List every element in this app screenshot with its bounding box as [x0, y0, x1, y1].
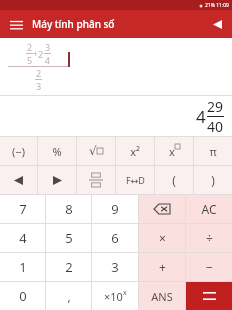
staticText: 40 [207, 117, 224, 136]
staticText: 6 [111, 229, 119, 247]
staticText: 8 [65, 200, 73, 218]
staticText: π [209, 144, 217, 159]
button[interactable]: Move left [0, 166, 37, 194]
button[interactable]: 1 [0, 253, 45, 281]
button[interactable]: − [186, 253, 232, 281]
button[interactable]: Fraction [77, 166, 115, 194]
staticText: (−) [12, 144, 25, 159]
button[interactable]: Square root [77, 137, 115, 165]
staticText: 0 [19, 287, 27, 305]
staticText: 2 [36, 67, 42, 79]
button[interactable]: 8 [46, 195, 91, 223]
button[interactable]: Menu [6, 14, 26, 34]
button[interactable]: 2 [8, 41, 70, 92]
staticText: 3 [111, 258, 119, 276]
staticText: − [206, 259, 213, 275]
staticText: ÷ [206, 230, 213, 246]
staticText: 9 [111, 200, 119, 218]
staticText: 4 [196, 105, 206, 128]
button[interactable]: 0 [0, 282, 45, 310]
staticText: 4 [45, 54, 51, 66]
staticText: % [52, 144, 62, 159]
staticText: 2 [65, 258, 73, 276]
staticText: , [67, 288, 71, 304]
staticText: 7 [19, 200, 27, 218]
button[interactable]: 9 [92, 195, 138, 223]
staticText: x² [130, 144, 140, 159]
staticText: ANS [151, 289, 173, 304]
staticText: ×10 [104, 289, 123, 304]
staticText: F↔D [126, 174, 145, 186]
staticText: 29 [207, 97, 224, 116]
button[interactable]: 6 [92, 224, 138, 252]
staticText: x [123, 288, 127, 298]
button[interactable]: + [139, 253, 185, 281]
button[interactable]: AC [186, 195, 232, 223]
staticText: 2 [27, 41, 33, 53]
button[interactable]: 7 [0, 195, 45, 223]
button[interactable]: 3 [92, 253, 138, 281]
button[interactable]: 2 [46, 253, 91, 281]
button[interactable]: ( [155, 166, 193, 194]
staticText: + [159, 259, 166, 275]
staticText: x [169, 144, 175, 159]
staticText: √ [89, 144, 97, 158]
staticText: × [159, 230, 166, 246]
button[interactable]: (−) [0, 137, 37, 165]
staticText: 1 [19, 258, 27, 276]
staticText: ( [172, 172, 176, 188]
button[interactable]: π [194, 137, 232, 165]
button[interactable]: Back [208, 15, 226, 33]
button[interactable]: Backspace [139, 195, 185, 223]
staticText: Máy tính phân số [32, 17, 115, 31]
staticText: 3 [36, 80, 42, 92]
button[interactable]: ) [194, 166, 232, 194]
button[interactable]: Move right [38, 166, 76, 194]
button[interactable]: ÷ [186, 224, 232, 252]
button[interactable]: ×10 [92, 282, 138, 310]
button[interactable]: , [46, 282, 91, 310]
button[interactable]: ANS [139, 282, 185, 310]
button[interactable]: Power [155, 137, 193, 165]
button[interactable]: F↔D [116, 166, 154, 194]
staticText: + [33, 48, 38, 59]
staticText: 5 [27, 54, 33, 66]
button[interactable]: 5 [46, 224, 91, 252]
staticText: 5 [65, 229, 73, 247]
staticText: ) [211, 172, 215, 188]
button[interactable]: % [38, 137, 76, 165]
staticText: 4 [19, 229, 27, 247]
button[interactable]: × [139, 224, 185, 252]
button[interactable]: 4 [0, 224, 45, 252]
staticText: 2 [38, 48, 44, 60]
staticText: AC [201, 201, 217, 217]
button[interactable]: x² [116, 137, 154, 165]
staticText: 3 [45, 41, 51, 53]
button[interactable]: Equals [186, 282, 232, 310]
staticText: 21% 11:09 [205, 2, 229, 9]
